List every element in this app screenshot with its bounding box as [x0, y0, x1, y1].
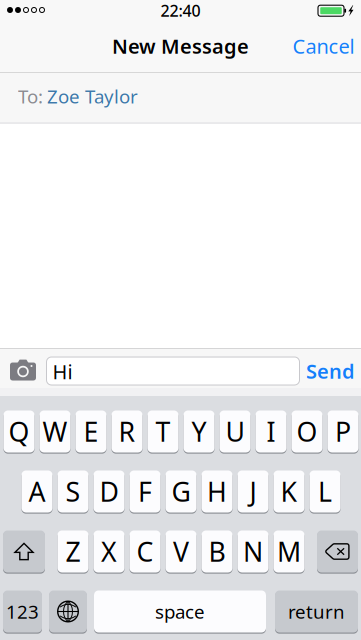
staticText: Q	[8, 414, 29, 449]
staticText: Hi	[52, 358, 72, 385]
staticText: N	[243, 534, 263, 569]
button[interactable]: Send	[302, 352, 358, 390]
staticText: X	[101, 534, 117, 569]
button[interactable]: Shift	[3, 530, 45, 573]
button[interactable]: C	[129, 530, 160, 573]
button[interactable]: L	[309, 470, 340, 513]
staticText: J	[249, 474, 256, 509]
button[interactable]: P	[327, 410, 358, 453]
staticText: 22:40	[160, 0, 200, 21]
staticText: I	[266, 414, 275, 449]
button[interactable]: X	[93, 530, 124, 573]
staticText: U	[225, 414, 244, 449]
staticText: M	[277, 534, 301, 569]
staticText: To:	[18, 84, 43, 109]
staticText: F	[138, 474, 152, 509]
staticText: G	[171, 474, 190, 509]
staticText: Cancel	[292, 33, 354, 59]
staticText: R	[118, 414, 135, 449]
staticText: T	[155, 414, 170, 449]
button[interactable]: M	[273, 530, 304, 573]
staticText: P	[335, 414, 351, 449]
staticText: Z	[65, 534, 80, 569]
staticText: return	[288, 599, 345, 624]
staticText: O	[296, 414, 317, 449]
button[interactable]: K	[273, 470, 304, 513]
button[interactable]: O	[291, 410, 322, 453]
staticText: Y	[191, 414, 206, 449]
staticText: Send	[306, 358, 355, 384]
button[interactable]: J	[237, 470, 268, 513]
button[interactable]: B	[201, 530, 232, 573]
staticText: C	[136, 534, 153, 569]
staticText: K	[280, 474, 297, 509]
button[interactable]: Cancel	[287, 21, 359, 71]
button[interactable]: R	[111, 410, 142, 453]
staticText: A	[28, 474, 45, 509]
button[interactable]: Take photo	[3, 351, 43, 389]
staticText: W	[42, 414, 67, 449]
button[interactable]: A	[21, 470, 52, 513]
button[interactable]: Z	[57, 530, 88, 573]
staticText: H	[207, 474, 227, 509]
button[interactable]: E	[75, 410, 106, 453]
button[interactable]: Delete	[317, 530, 358, 573]
button[interactable]: N	[237, 530, 268, 573]
staticText: V	[173, 534, 189, 569]
button[interactable]: I	[255, 410, 286, 453]
staticText: L	[318, 474, 332, 509]
button[interactable]: T	[147, 410, 178, 453]
staticText: B	[208, 534, 225, 569]
staticText: space	[155, 599, 205, 624]
staticText: E	[83, 414, 98, 449]
button[interactable]: 123	[3, 590, 42, 633]
button[interactable]: Q	[3, 410, 34, 453]
button[interactable]: D	[93, 470, 124, 513]
staticText: New Message	[112, 33, 249, 59]
button[interactable]: S	[57, 470, 88, 513]
staticText: Zoe Taylor	[47, 84, 138, 109]
button[interactable]: Y	[183, 410, 214, 453]
button[interactable]: W	[39, 410, 70, 453]
staticText: S	[65, 474, 80, 509]
staticText: D	[99, 474, 118, 509]
button[interactable]: U	[219, 410, 250, 453]
button[interactable]: H	[201, 470, 232, 513]
staticText: 123	[6, 599, 39, 624]
button[interactable]: Next keyboard	[49, 590, 87, 633]
button[interactable]: return	[275, 590, 358, 633]
button[interactable]: G	[165, 470, 196, 513]
button[interactable]: space	[94, 590, 266, 633]
button[interactable]: V	[165, 530, 196, 573]
button[interactable]: F	[129, 470, 160, 513]
